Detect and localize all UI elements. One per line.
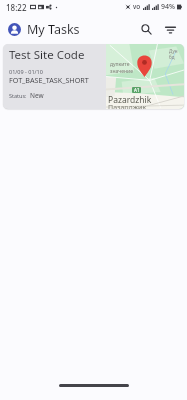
staticText: Дун бд xyxy=(169,48,178,60)
staticText: 01/09 - 01/10 xyxy=(9,68,43,75)
staticText: VO xyxy=(133,4,141,11)
staticText: New xyxy=(30,91,44,100)
button[interactable]: Account xyxy=(8,23,21,36)
staticText: 94% xyxy=(161,2,175,12)
button[interactable]: Filter xyxy=(159,18,181,40)
staticText: A1 xyxy=(134,87,140,93)
staticText: дупките значение xyxy=(110,61,133,75)
staticText: FOT_BASE_TASK_SHORT xyxy=(9,75,89,85)
staticText: Test Site Code xyxy=(9,47,85,63)
staticText: Пазарджик xyxy=(108,103,147,109)
button[interactable]: Test Site Code xyxy=(3,44,184,109)
staticText: My Tasks xyxy=(27,21,80,38)
staticText: 18:22 xyxy=(6,2,27,13)
staticText: Status: xyxy=(9,92,27,99)
button[interactable]: Search xyxy=(135,18,157,40)
staticText: Pazardzhik xyxy=(108,94,152,106)
